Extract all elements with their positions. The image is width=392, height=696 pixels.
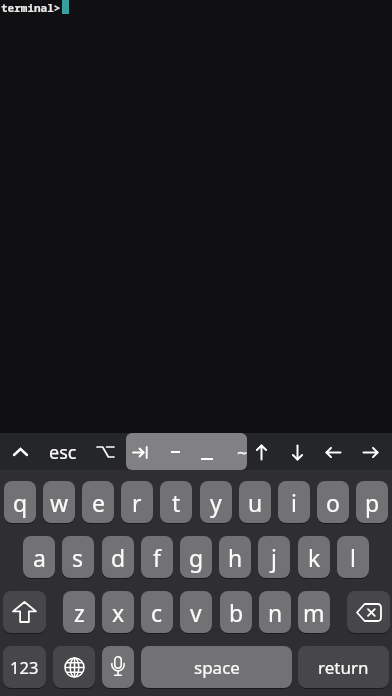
staticText: p xyxy=(365,487,380,518)
button[interactable]: n xyxy=(259,591,291,633)
button[interactable]: o xyxy=(317,481,349,523)
button[interactable]: 123 xyxy=(3,646,46,688)
button[interactable]: g xyxy=(180,536,212,578)
staticText: y xyxy=(210,487,222,518)
button[interactable]: j xyxy=(258,536,290,578)
button[interactable]: ~ xyxy=(230,435,254,471)
staticText: w xyxy=(50,487,69,518)
staticText: g xyxy=(189,542,204,573)
staticText: n xyxy=(268,597,283,628)
button[interactable]: space xyxy=(141,646,292,688)
button[interactable] xyxy=(88,434,122,470)
staticText: j xyxy=(271,542,277,573)
staticText: q xyxy=(13,487,28,518)
staticText: ~ xyxy=(237,441,248,466)
staticText: e xyxy=(92,487,105,518)
staticText: space xyxy=(194,656,240,679)
staticText: r xyxy=(132,487,142,518)
button[interactable]: l xyxy=(337,536,369,578)
button[interactable]: y xyxy=(200,481,232,523)
button[interactable] xyxy=(163,434,187,470)
button[interactable]: r xyxy=(121,481,153,523)
button[interactable]: s xyxy=(62,536,94,578)
staticText: v xyxy=(190,597,202,628)
button[interactable] xyxy=(53,646,95,688)
button[interactable]: m xyxy=(298,591,330,633)
button[interactable]: d xyxy=(102,536,134,578)
staticText: l xyxy=(350,542,356,573)
button[interactable]: i xyxy=(278,481,310,523)
staticText: o xyxy=(326,487,340,518)
staticText: k xyxy=(308,542,321,573)
staticText: a xyxy=(33,542,46,573)
button[interactable]: k xyxy=(298,536,330,578)
staticText: d xyxy=(111,542,126,573)
button[interactable] xyxy=(102,646,134,688)
staticText: h xyxy=(228,542,243,573)
staticText: esc xyxy=(49,440,77,465)
button[interactable]: u xyxy=(239,481,271,523)
button[interactable]: return xyxy=(298,646,389,688)
staticText: i xyxy=(291,487,297,518)
button[interactable]: esc xyxy=(43,434,83,470)
button[interactable]: x xyxy=(102,591,134,633)
button[interactable]: q xyxy=(4,481,36,523)
staticText: 123 xyxy=(10,656,39,678)
staticText: c xyxy=(151,597,163,628)
staticText: t xyxy=(172,487,181,518)
staticText: f xyxy=(153,542,161,573)
button[interactable]: f xyxy=(141,536,173,578)
button[interactable] xyxy=(347,591,390,633)
button[interactable] xyxy=(126,433,247,470)
staticText: m xyxy=(303,597,325,628)
button[interactable]: b xyxy=(220,591,252,633)
staticText: s xyxy=(72,542,84,573)
button[interactable] xyxy=(355,434,385,470)
staticText: terminal> xyxy=(1,0,61,15)
button[interactable] xyxy=(195,448,219,470)
staticText: x xyxy=(112,597,125,628)
button[interactable] xyxy=(5,434,35,470)
button[interactable] xyxy=(246,434,276,470)
button[interactable]: p xyxy=(356,481,388,523)
button[interactable]: z xyxy=(63,591,95,633)
button[interactable]: c xyxy=(141,591,173,633)
button[interactable]: e xyxy=(82,481,114,523)
button[interactable]: a xyxy=(23,536,55,578)
button[interactable] xyxy=(3,591,46,633)
button[interactable] xyxy=(126,434,156,470)
staticText: u xyxy=(248,487,263,518)
staticText: b xyxy=(229,597,244,628)
staticText: z xyxy=(74,597,85,628)
button[interactable]: h xyxy=(219,536,251,578)
staticText: return xyxy=(318,656,369,679)
button[interactable]: w xyxy=(43,481,75,523)
button[interactable]: t xyxy=(160,481,192,523)
button[interactable]: v xyxy=(180,591,212,633)
button[interactable] xyxy=(318,434,348,470)
button[interactable] xyxy=(282,434,312,470)
